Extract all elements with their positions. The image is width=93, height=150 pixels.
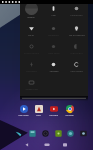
staticText: YouTube xyxy=(49,114,58,117)
button[interactable]: Recents xyxy=(59,140,71,150)
staticText: Device xyxy=(27,16,35,19)
staticText: Screen cast xyxy=(25,88,38,91)
button[interactable]: Wi-Fi xyxy=(20,21,42,39)
button[interactable]: Airplane xyxy=(42,57,65,75)
button[interactable]: Calculator xyxy=(26,128,38,139)
button[interactable]: Device xyxy=(20,0,42,21)
staticText: Files xyxy=(36,114,41,117)
staticText: Data saver xyxy=(48,52,60,55)
button[interactable]: Data saver xyxy=(42,39,65,57)
staticText: 13% xyxy=(51,14,56,17)
button[interactable]: Camera xyxy=(77,128,89,139)
button[interactable]: Night Light xyxy=(65,39,88,57)
staticText: Bluetooth xyxy=(48,34,59,37)
button[interactable]: Flashlight xyxy=(20,57,42,75)
button[interactable]: Messages xyxy=(52,128,64,139)
button[interactable]: Screen record xyxy=(20,39,42,57)
staticText: Night Light xyxy=(70,52,83,55)
button[interactable]: Browser xyxy=(64,128,76,139)
staticText: Flashlight xyxy=(26,70,37,73)
staticText: Airplane xyxy=(49,70,59,73)
staticText: Chrome xyxy=(65,114,74,117)
button[interactable]: Phone xyxy=(12,128,24,139)
staticText: Connection xyxy=(70,14,83,17)
button[interactable]: Auto-rotate xyxy=(65,57,88,75)
button[interactable]: Do not disturb xyxy=(65,21,88,39)
staticText: Play Store xyxy=(18,114,29,117)
staticText: Wi-Fi xyxy=(28,34,34,37)
button[interactable]: Clock xyxy=(39,128,51,139)
staticText: Screen record xyxy=(24,52,39,55)
button[interactable]: Play Store xyxy=(16,105,31,119)
button[interactable]: YouTube xyxy=(46,105,61,119)
button[interactable]: 13% xyxy=(42,0,65,21)
staticText: Auto-rotate xyxy=(70,70,83,73)
button[interactable]: Back xyxy=(21,140,33,150)
button[interactable]: Home xyxy=(41,140,53,150)
button[interactable]: Connection xyxy=(65,0,88,21)
button[interactable]: Files xyxy=(31,105,46,119)
button[interactable]: Bluetooth xyxy=(42,21,65,39)
button[interactable]: Chrome xyxy=(62,105,77,119)
button[interactable]: Screen cast xyxy=(20,75,42,93)
staticText: Do not disturb xyxy=(69,34,85,37)
